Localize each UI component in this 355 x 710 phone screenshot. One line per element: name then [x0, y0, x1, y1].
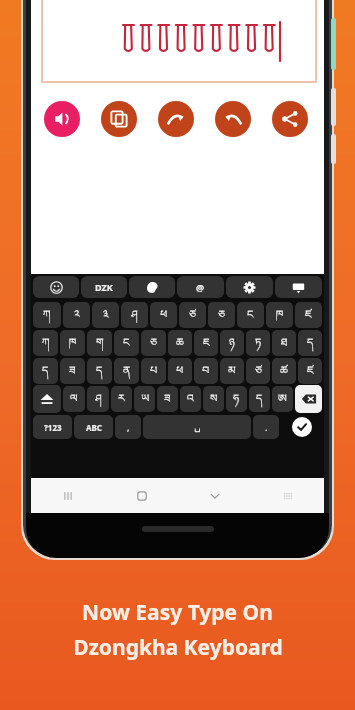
- button[interactable]: Emoji: [33, 276, 79, 298]
- button[interactable]: Shift: [33, 385, 61, 413]
- button[interactable]: ཁ: [60, 330, 85, 356]
- staticText: ཨ: [278, 386, 287, 412]
- button[interactable]: ཛ: [295, 302, 322, 328]
- staticText: བ: [202, 358, 210, 384]
- button[interactable]: ཟ: [157, 386, 178, 412]
- button[interactable]: DZK: [81, 276, 127, 298]
- staticText: ར: [118, 386, 125, 412]
- button[interactable]: བ: [194, 358, 218, 384]
- staticText: ཧ: [233, 386, 240, 412]
- staticText: ,: [127, 421, 130, 433]
- staticText: ཏ: [255, 330, 262, 356]
- button[interactable]: Keyboard: [275, 276, 322, 298]
- button[interactable]: ལ: [63, 386, 85, 412]
- staticText: ␣: [194, 421, 201, 433]
- staticText: ?123: [44, 422, 62, 433]
- button[interactable]: ཀ: [33, 302, 61, 328]
- button[interactable]: ཨ: [272, 386, 293, 412]
- button[interactable]: ང: [114, 330, 139, 356]
- staticText: ཉ: [229, 330, 235, 356]
- staticText: མ: [228, 358, 236, 384]
- button[interactable]: ,: [115, 415, 141, 439]
- button[interactable]: Theme: [129, 276, 175, 298]
- staticText: ༢: [74, 302, 80, 328]
- button[interactable]: Speak: [44, 101, 80, 137]
- button[interactable]: Recents: [31, 479, 105, 513]
- staticText: འ: [187, 386, 194, 412]
- button[interactable]: ཉ: [220, 330, 244, 356]
- staticText: ཀ: [42, 330, 50, 356]
- button[interactable]: @: [177, 276, 224, 298]
- button[interactable]: ཧ: [226, 386, 247, 412]
- button[interactable]: ༢: [63, 302, 90, 328]
- button[interactable]: ད: [33, 358, 58, 384]
- button[interactable]: མ: [220, 358, 244, 384]
- button[interactable]: ཏ: [246, 330, 270, 356]
- staticText: ཅ: [218, 302, 225, 328]
- staticText: ད: [256, 386, 263, 412]
- button[interactable]: ABC: [74, 415, 113, 439]
- button[interactable]: ཐ: [272, 330, 296, 356]
- staticText: ང: [123, 330, 130, 356]
- staticText: ཙ: [189, 302, 196, 328]
- button[interactable]: ས: [203, 386, 224, 412]
- staticText: Dzongkha Keyboard: [73, 633, 283, 662]
- staticText: ད: [96, 358, 103, 384]
- button[interactable]: ཕ: [168, 358, 192, 384]
- staticText: ང: [247, 302, 254, 328]
- staticText: ཤ: [95, 386, 102, 412]
- staticText: ABC: [86, 422, 102, 433]
- staticText: ཙ: [255, 358, 262, 384]
- button[interactable]: ཅ: [141, 330, 166, 356]
- button[interactable]: ཟ: [60, 358, 85, 384]
- staticText: ད: [42, 358, 49, 384]
- staticText: ཐ: [281, 330, 288, 356]
- button[interactable]: ག: [87, 330, 112, 356]
- button[interactable]: Back: [178, 479, 251, 513]
- button[interactable]: ད: [298, 330, 322, 356]
- button[interactable]: ཁ: [266, 302, 293, 328]
- button[interactable]: ␣: [143, 415, 251, 439]
- staticText: @: [196, 281, 205, 293]
- button[interactable]: ཙ: [246, 358, 270, 384]
- staticText: ག: [96, 330, 104, 356]
- button[interactable]: Share: [272, 101, 308, 137]
- button[interactable]: ཇ: [194, 330, 218, 356]
- button[interactable]: ཤ: [121, 302, 148, 328]
- button[interactable]: ཤ: [87, 386, 109, 412]
- button[interactable]: ན: [114, 358, 139, 384]
- staticText: ཡ: [141, 386, 149, 412]
- staticText: ན: [123, 358, 131, 384]
- button[interactable]: ཛ: [298, 358, 322, 384]
- button[interactable]: ང: [237, 302, 264, 328]
- button[interactable]: ད: [249, 386, 270, 412]
- staticText: ཕ: [160, 302, 168, 328]
- button[interactable]: Home: [105, 479, 178, 513]
- staticText: ལ: [70, 386, 78, 412]
- button[interactable]: ར: [111, 386, 132, 412]
- button[interactable]: Copy: [101, 101, 137, 137]
- button[interactable]: ཀ: [33, 330, 58, 356]
- button[interactable]: Enter: [281, 414, 322, 440]
- button[interactable]: ཕ: [150, 302, 177, 328]
- button[interactable]: འ: [180, 386, 201, 412]
- button[interactable]: ཆ: [168, 330, 192, 356]
- button[interactable]: Backspace: [295, 385, 322, 413]
- button[interactable]: Undo: [215, 101, 251, 137]
- button[interactable]: ད: [87, 358, 112, 384]
- button[interactable]: Redo: [158, 101, 194, 137]
- button[interactable]: ཡ: [134, 386, 155, 412]
- button[interactable]: པ: [141, 358, 166, 384]
- staticText: Now Easy Type On: [82, 598, 273, 627]
- staticText: ཁ: [69, 330, 77, 356]
- button[interactable]: ཅ: [208, 302, 235, 328]
- staticText: DZK: [95, 281, 113, 293]
- button[interactable]: ༣: [92, 302, 119, 328]
- button[interactable]: ཚ: [272, 358, 296, 384]
- staticText: ཟ: [69, 358, 76, 384]
- button[interactable]: ཙ: [179, 302, 206, 328]
- button[interactable]: Settings: [226, 276, 273, 298]
- button[interactable]: .: [253, 415, 279, 439]
- button[interactable]: ?123: [33, 415, 72, 439]
